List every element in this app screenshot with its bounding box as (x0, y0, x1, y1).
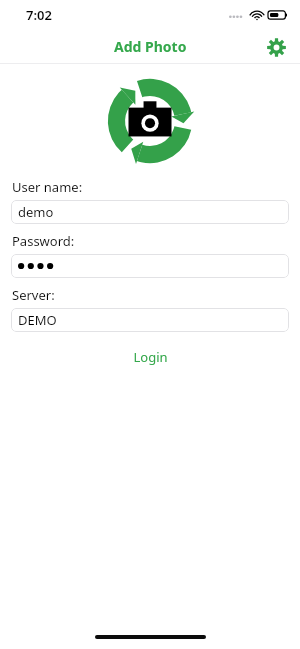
staticText: DEMO (18, 311, 57, 329)
button[interactable]: Add Photo (108, 35, 193, 58)
button[interactable]: Login (119, 344, 182, 370)
staticText: Password: (12, 232, 75, 250)
button[interactable] (11, 254, 289, 278)
staticText: demo (18, 203, 54, 221)
button[interactable]: DEMO (11, 308, 289, 332)
staticText: Add Photo (114, 37, 187, 56)
staticText: 7:02 (26, 6, 52, 24)
staticText: Server: (12, 286, 55, 304)
staticText: Login (133, 348, 168, 366)
button[interactable]: demo (11, 200, 289, 224)
staticText: User name: (12, 178, 83, 196)
button[interactable]: Settings (260, 31, 292, 63)
